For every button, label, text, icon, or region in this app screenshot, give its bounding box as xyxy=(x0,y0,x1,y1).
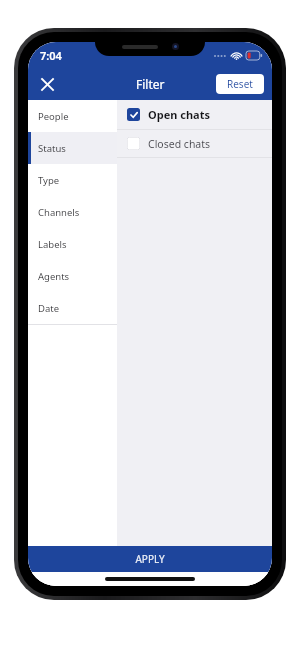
button[interactable]: Status xyxy=(28,132,117,164)
staticText: Type xyxy=(38,174,60,187)
button[interactable]: Type xyxy=(28,164,117,196)
button[interactable]: Open chats xyxy=(117,100,272,130)
staticText: Reset xyxy=(227,77,253,91)
button[interactable]: Reset xyxy=(216,74,264,94)
staticText: Agents xyxy=(38,270,70,283)
staticText: Labels xyxy=(38,238,67,251)
staticText: APPLY xyxy=(135,552,165,566)
button[interactable]: Labels xyxy=(28,228,117,260)
button[interactable]: Date xyxy=(28,292,117,324)
button[interactable]: Close xyxy=(34,71,60,97)
staticText: People xyxy=(38,110,69,123)
staticText: Date xyxy=(38,302,60,315)
staticText: Closed chats xyxy=(148,137,211,151)
staticText: Filter xyxy=(136,76,165,92)
button[interactable]: Closed chats xyxy=(117,130,272,158)
staticText: 7:04 xyxy=(40,48,62,63)
staticText: Open chats xyxy=(148,107,210,122)
staticText: Status xyxy=(38,142,66,155)
button[interactable]: People xyxy=(28,100,117,132)
button[interactable]: APPLY xyxy=(28,546,272,572)
staticText: Channels xyxy=(38,206,80,219)
button[interactable]: Channels xyxy=(28,196,117,228)
button[interactable]: Agents xyxy=(28,260,117,292)
